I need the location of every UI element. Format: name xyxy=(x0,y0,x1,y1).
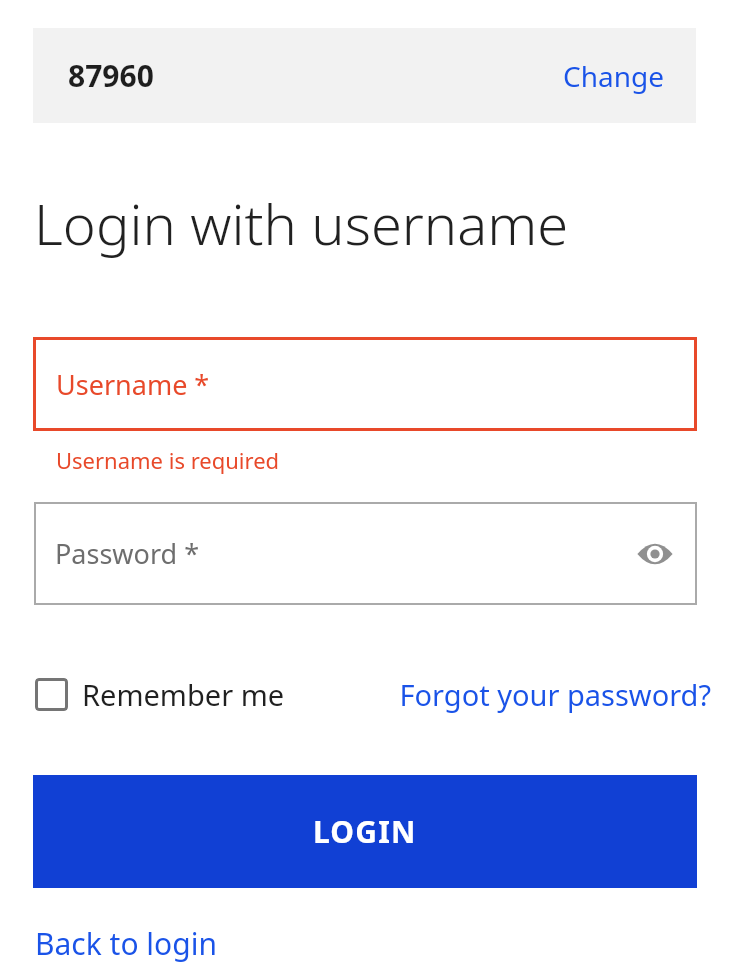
staticText: Password * xyxy=(55,535,200,572)
button[interactable]: Show password xyxy=(631,530,679,578)
button[interactable]: Username * xyxy=(33,337,697,431)
button[interactable]: Password * xyxy=(34,502,697,605)
staticText: Back to login xyxy=(35,923,217,964)
staticText: Forgot your password? xyxy=(399,675,711,714)
button[interactable]: Forgot your password? xyxy=(399,669,711,720)
button[interactable]: LOGIN xyxy=(33,775,697,888)
staticText: Change xyxy=(563,57,665,95)
staticText: 87960 xyxy=(68,55,154,96)
staticText: Remember me xyxy=(82,675,285,714)
staticText: Login with username xyxy=(34,185,569,261)
staticText: Username is required xyxy=(56,445,280,475)
button[interactable]: Remember me xyxy=(33,669,287,720)
button[interactable]: Back to login xyxy=(26,915,226,966)
button[interactable]: Change xyxy=(532,43,696,109)
staticText: LOGIN xyxy=(313,811,417,852)
staticText: Username * xyxy=(56,366,210,403)
